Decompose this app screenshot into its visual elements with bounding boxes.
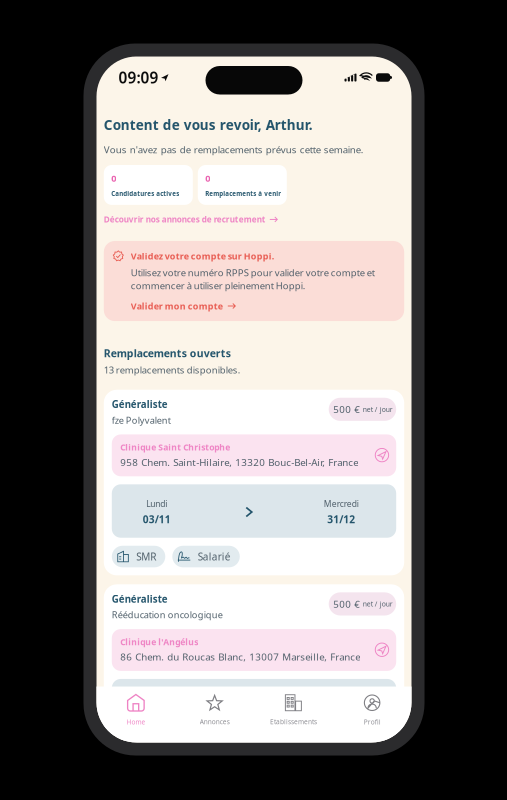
staticText: 09:09 bbox=[118, 67, 158, 88]
staticText: 03/11 bbox=[143, 707, 171, 721]
button[interactable]: Découvrir nos annonces de recrutement bbox=[104, 214, 278, 225]
staticText: Content de vous revoir, Arthur. bbox=[104, 115, 313, 134]
staticText: fze Polyvalent bbox=[112, 414, 171, 426]
staticText: Remplacements ouverts bbox=[104, 346, 231, 360]
staticText: Annonces bbox=[200, 717, 230, 726]
button[interactable]: Annonces bbox=[175, 693, 254, 728]
staticText: 0 bbox=[205, 172, 210, 184]
staticText: Utilisez votre numéro RPPS pour valider … bbox=[131, 266, 375, 292]
button[interactable]: Itinéraire bbox=[375, 448, 389, 462]
staticText: Candidatures actives bbox=[111, 189, 179, 198]
button[interactable]: Généraliste bbox=[104, 390, 404, 575]
button[interactable]: SMR bbox=[112, 546, 165, 567]
staticText: 13 remplacements disponibles. bbox=[104, 363, 241, 376]
staticText: 958 Chem. Saint-Hilaire, 13320 Bouc-Bel-… bbox=[120, 456, 358, 469]
button[interactable]: Profil bbox=[333, 692, 412, 728]
button[interactable]: Home bbox=[96, 692, 175, 728]
staticText: Remplacements à venir bbox=[205, 189, 281, 198]
staticText: Rééducation oncologique bbox=[112, 608, 223, 621]
button[interactable]: Etablissements bbox=[254, 693, 333, 728]
staticText: 86 Chem. du Roucas Blanc, 13007 Marseill… bbox=[120, 650, 360, 663]
staticText: net / jour bbox=[363, 599, 393, 609]
staticText: Lundi bbox=[146, 498, 167, 509]
staticText: Découvrir nos annonces de recrutement bbox=[104, 214, 266, 225]
staticText: Mercredi bbox=[324, 498, 359, 509]
button[interactable]: Valider mon compte bbox=[131, 300, 236, 312]
staticText: Généraliste bbox=[112, 398, 168, 411]
staticText: Profil bbox=[364, 717, 381, 726]
button[interactable]: Généraliste bbox=[104, 584, 404, 740]
button[interactable]: Salarié bbox=[172, 546, 240, 567]
staticText: Salarié bbox=[198, 550, 231, 563]
staticText: Home bbox=[126, 717, 145, 726]
staticText: 0 bbox=[111, 172, 116, 184]
button[interactable]: 0 bbox=[104, 165, 193, 205]
staticText: Généraliste bbox=[112, 592, 168, 606]
staticText: Vous n'avez pas de remplacements prévus … bbox=[104, 143, 364, 156]
button[interactable]: 0 bbox=[198, 165, 287, 205]
staticText: 500 € bbox=[333, 403, 360, 416]
staticText: 31/12 bbox=[327, 512, 355, 526]
staticText: 500 € bbox=[333, 597, 360, 611]
staticText: SMR bbox=[136, 550, 156, 563]
staticText: Clinique Saint Christophe bbox=[120, 441, 230, 453]
button[interactable]: Itinéraire bbox=[375, 642, 389, 657]
staticText: Validez votre compte sur Hoppi. bbox=[131, 250, 275, 262]
staticText: net / jour bbox=[363, 405, 393, 414]
staticText: 03/11 bbox=[143, 512, 171, 526]
staticText: Etablissements bbox=[270, 717, 317, 726]
staticText: Valider mon compte bbox=[131, 300, 223, 312]
staticText: Clinique l'Angélus bbox=[120, 636, 198, 648]
